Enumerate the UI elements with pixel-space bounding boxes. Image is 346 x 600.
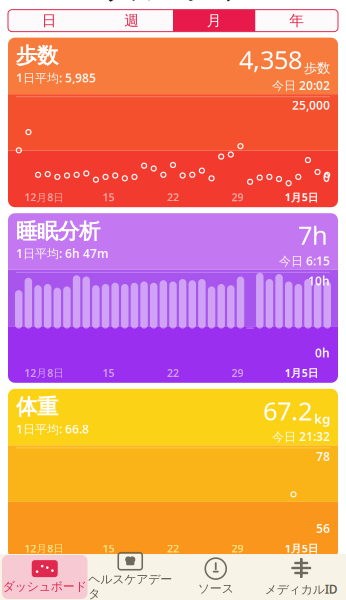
staticText: 1月5日 (285, 541, 319, 555)
staticText: 歩数 (16, 43, 58, 69)
staticText: 15 (103, 366, 115, 380)
button[interactable]: 週 (90, 10, 173, 32)
staticText: kg (314, 410, 330, 427)
staticText: 78 (316, 448, 330, 464)
button[interactable]: 月 (173, 10, 255, 32)
staticText: 0h (315, 345, 330, 361)
staticText: 1月5日 (285, 190, 319, 204)
staticText: 29 (231, 366, 243, 380)
staticText: 1日平均: 66.8 (16, 421, 89, 437)
button[interactable]: ダッシュボード (2, 555, 87, 599)
staticText: ヘルスケアデータ (88, 572, 172, 600)
staticText: 12月8日 (24, 541, 64, 555)
staticText: 日 (42, 12, 57, 30)
button[interactable]: 歩数 (8, 38, 338, 207)
staticText: 10h (308, 273, 330, 289)
staticText: 週 (124, 12, 139, 30)
staticText: 体脂肪率 (16, 569, 100, 596)
button[interactable]: 体脂肪率 (8, 564, 338, 600)
staticText: 1日平均: 6h 47m (16, 245, 109, 261)
button[interactable]: 体重 (8, 389, 338, 558)
staticText: 56 (316, 520, 330, 536)
button[interactable]: ヘルスケアデータ (87, 555, 173, 599)
staticText: ダッシュボード (3, 579, 87, 594)
staticText: 22 (167, 541, 179, 555)
staticText: 今日 6:15 (279, 253, 330, 269)
button[interactable]: 年 (255, 10, 338, 32)
staticText: 22 (167, 190, 179, 204)
staticText: 月 (207, 12, 222, 30)
staticText: 29 (231, 541, 243, 555)
button[interactable]: 日 (8, 10, 90, 32)
staticText: 29 (231, 190, 243, 204)
staticText: 1日平均: 5,985 (16, 70, 96, 86)
button[interactable]: ソース (173, 555, 258, 599)
staticText: 22 (167, 366, 179, 380)
staticText: % (318, 585, 330, 600)
staticText: ソース (198, 581, 234, 596)
staticText: 年 (289, 12, 304, 30)
staticText: 15 (103, 541, 115, 555)
staticText: 体重 (16, 394, 58, 420)
staticText: 67.2 (263, 394, 312, 427)
staticText: 12月8日 (24, 190, 64, 204)
staticText: 0 (323, 169, 330, 185)
staticText: メディカルID (265, 581, 338, 597)
staticText: 12月8日 (24, 366, 64, 380)
staticText: ダッシュボード (106, 0, 239, 4)
button[interactable]: メディカルID (258, 555, 344, 599)
staticText: 今日 21:32 (272, 428, 330, 444)
staticText: 歩数 (304, 60, 330, 76)
staticText: 7h (298, 218, 328, 252)
button[interactable]: 睡眠分析 (8, 213, 338, 383)
staticText: 今日 20:02 (272, 77, 330, 93)
staticText: 15 (103, 190, 115, 204)
staticText: 25,000 (292, 97, 330, 113)
staticText: 14.84 (253, 569, 316, 600)
staticText: 4,358 (239, 43, 302, 76)
staticText: 1月5日 (285, 366, 319, 380)
staticText: 睡眠分析 (16, 218, 100, 244)
